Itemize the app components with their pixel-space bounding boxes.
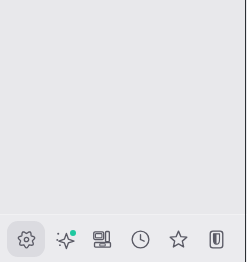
button[interactable]: Security (197, 221, 235, 257)
button[interactable]: Clock (121, 221, 159, 257)
button[interactable]: Favorites (159, 221, 197, 257)
button[interactable]: Assistant (45, 221, 83, 257)
button[interactable]: Connected devices (83, 221, 121, 257)
button[interactable]: Settings (7, 221, 45, 257)
